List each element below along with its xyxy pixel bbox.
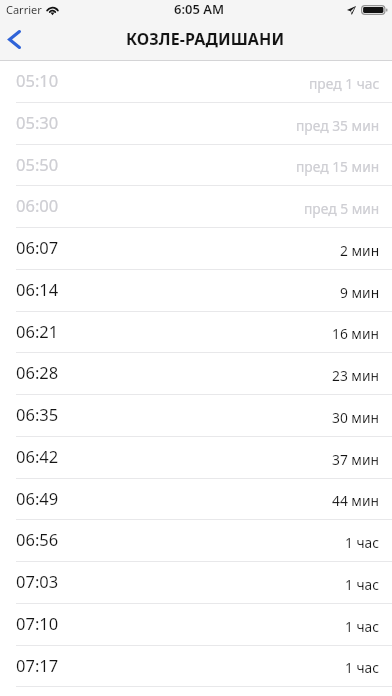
staticText: 06:42	[16, 445, 59, 467]
staticText: 1 час	[345, 533, 380, 552]
staticText: 06:21	[16, 320, 59, 342]
staticText: 6:05 AM	[174, 0, 225, 18]
staticText: 37 мин	[332, 450, 380, 469]
staticText: пред 1 час	[309, 74, 380, 93]
button[interactable]: 06:28	[0, 353, 392, 395]
staticText: 07:03	[16, 570, 59, 592]
button[interactable]: 05:50	[0, 145, 392, 186]
staticText: 16 мин	[332, 324, 380, 343]
staticText: 1 час	[345, 617, 380, 636]
button[interactable]: 06:07	[0, 228, 392, 270]
staticText: 06:35	[16, 403, 59, 425]
staticText: КОЗЛЕ-РАДИШАНИ	[126, 28, 285, 50]
staticText: 06:14	[16, 278, 59, 300]
staticText: 06:28	[16, 361, 59, 383]
staticText: 06:56	[16, 528, 59, 550]
button[interactable]: 06:56	[0, 520, 392, 562]
button[interactable]: 05:30	[0, 103, 392, 145]
staticText: 05:50	[16, 153, 59, 175]
button[interactable]: 07:03	[0, 562, 392, 604]
button[interactable]: 06:21	[0, 312, 392, 353]
staticText: 06:00	[16, 194, 59, 216]
button[interactable]: 05:10	[0, 61, 392, 103]
staticText: 05:30	[16, 111, 59, 133]
staticText: пред 35 мин	[296, 116, 380, 135]
button[interactable]: 06:00	[0, 186, 392, 228]
staticText: 07:17	[16, 654, 59, 676]
staticText: 9 мин	[340, 283, 380, 302]
staticText: 30 мин	[332, 408, 380, 427]
button[interactable]: 06:35	[0, 395, 392, 437]
staticText: 23 мин	[332, 366, 380, 385]
button[interactable]: 07:17	[0, 646, 392, 687]
staticText: 06:49	[16, 487, 59, 509]
staticText: 06:07	[16, 236, 59, 258]
button[interactable]: 06:42	[0, 437, 392, 479]
staticText: пред 5 мин	[304, 199, 380, 218]
staticText: 07:10	[16, 612, 59, 634]
button[interactable]: 06:14	[0, 270, 392, 312]
staticText: 44 мин	[332, 491, 380, 510]
staticText: Carrier	[6, 2, 42, 17]
button[interactable]: 07:10	[0, 604, 392, 646]
button[interactable]: Back	[0, 20, 36, 59]
button[interactable]: 06:49	[0, 479, 392, 520]
staticText: пред 15 мин	[296, 157, 380, 176]
staticText: 2 мин	[340, 241, 380, 260]
staticText: 1 час	[345, 575, 380, 594]
staticText: 1 час	[345, 658, 380, 677]
staticText: 05:10	[16, 69, 59, 91]
